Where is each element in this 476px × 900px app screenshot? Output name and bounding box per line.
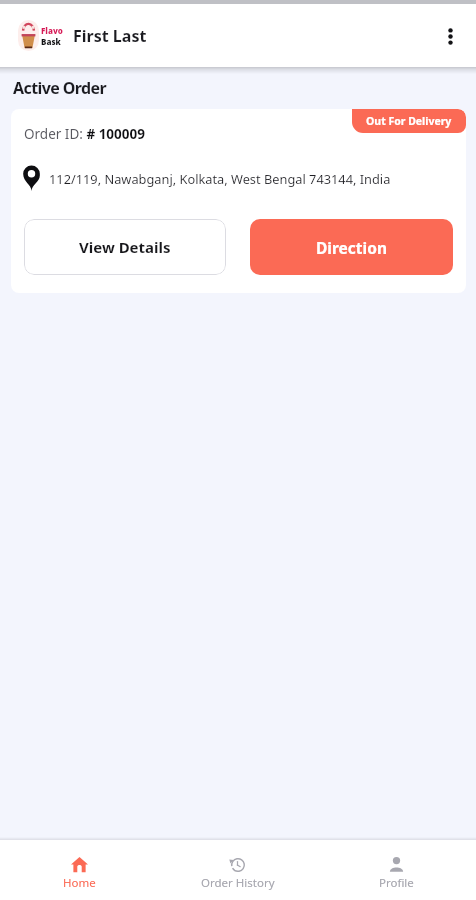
button[interactable]: View Details bbox=[24, 219, 226, 275]
staticText: Order ID: # 100009 bbox=[24, 125, 145, 143]
staticText: Order History bbox=[201, 875, 275, 891]
staticText: First Last bbox=[73, 25, 147, 47]
staticText: Direction bbox=[316, 237, 387, 258]
staticText: Home bbox=[63, 875, 96, 891]
staticText: Active Order bbox=[13, 77, 107, 99]
staticText: Profile bbox=[379, 875, 414, 891]
button[interactable]: Profile bbox=[317, 841, 476, 899]
staticText: Out For Delivery bbox=[366, 114, 452, 128]
button[interactable]: Out For Delivery bbox=[352, 109, 466, 133]
button[interactable]: Home bbox=[0, 841, 158, 899]
button[interactable]: Direction bbox=[250, 219, 453, 275]
staticText: Bask bbox=[41, 36, 61, 47]
staticText: 112/119, Nawabganj, Kolkata, West Bengal… bbox=[49, 170, 391, 187]
button[interactable]: More options bbox=[428, 14, 472, 58]
button[interactable]: Order History bbox=[158, 841, 317, 899]
staticText: View Details bbox=[79, 237, 171, 257]
staticText: Flavo bbox=[41, 25, 63, 36]
